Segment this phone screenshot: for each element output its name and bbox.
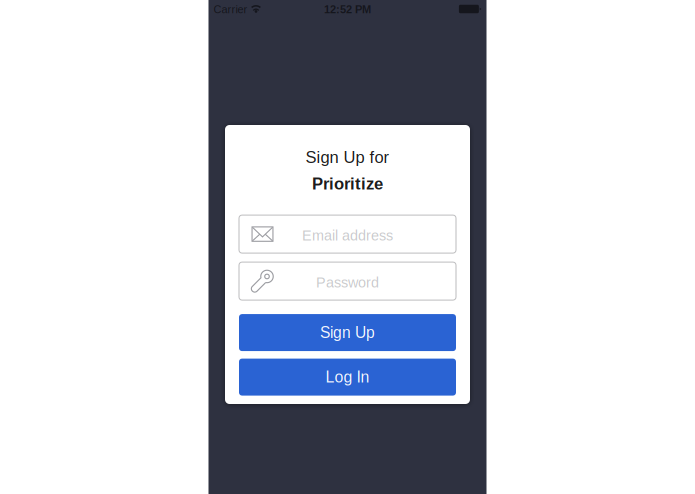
staticText: Email address	[302, 227, 393, 244]
staticText: Password	[316, 274, 379, 291]
staticText: Sign Up for	[305, 148, 389, 166]
button[interactable]: Password	[239, 262, 456, 300]
button[interactable]: Log In	[239, 359, 456, 396]
staticText: Prioritize	[312, 174, 383, 193]
button[interactable]: Sign Up	[239, 314, 456, 351]
staticText: Sign Up	[320, 324, 375, 341]
staticText: Log In	[325, 368, 369, 386]
staticText: 12:52 PM	[324, 3, 371, 16]
staticText: Carrier	[213, 3, 247, 16]
button[interactable]: Email address	[239, 215, 456, 253]
